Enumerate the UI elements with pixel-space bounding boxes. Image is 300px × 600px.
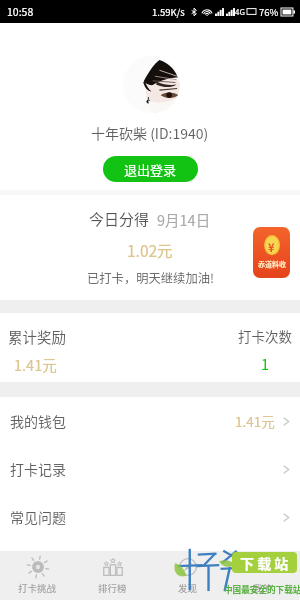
staticText: 排行榜 <box>98 581 127 595</box>
staticText: 1.41元 <box>14 354 57 375</box>
staticText: 已打卡，明天继续加油! <box>87 269 214 287</box>
staticText: 发现 <box>178 581 198 595</box>
staticText: 十年砍柴 (ID:1940) <box>91 123 209 143</box>
staticText: 打卡次数 <box>238 326 292 346</box>
staticText: 常见问题 <box>10 507 66 527</box>
staticText: 1 <box>261 353 270 374</box>
staticText: 中国最安全的下载站 <box>224 583 300 595</box>
staticText: 累计奖励 <box>8 326 66 347</box>
staticText: 76% <box>259 5 279 19</box>
staticText: 下 载 站 <box>240 553 289 573</box>
button[interactable]: 赤道料收 <box>253 227 290 278</box>
button[interactable]: 退出登录 <box>103 156 198 182</box>
button[interactable]: 排行榜 <box>75 551 150 600</box>
staticText: 4G <box>235 6 245 18</box>
button[interactable]: 打卡记录 <box>0 445 300 493</box>
button[interactable]: 头像 <box>123 56 180 113</box>
staticText: 我的钱包 <box>10 411 66 431</box>
staticText: 我的 <box>253 581 273 595</box>
button[interactable]: 打卡挑战 <box>0 551 75 600</box>
staticText: 1.59K/s <box>152 5 185 19</box>
button[interactable]: 打卡次数 <box>150 311 300 383</box>
staticText: 退出登录 <box>124 160 177 179</box>
button[interactable]: 累计奖励 <box>0 311 150 383</box>
staticText: 打卡记录 <box>10 459 66 479</box>
staticText: ¥ <box>268 239 275 255</box>
staticText: 10:58 <box>7 4 34 19</box>
button[interactable]: 我的钱包 <box>0 397 300 445</box>
button[interactable]: 发现 <box>150 551 225 600</box>
staticText: 1.02元 <box>127 239 173 261</box>
button[interactable]: 我的 <box>225 551 300 600</box>
staticText: 1.41元 <box>235 411 275 431</box>
button[interactable]: 常见问题 <box>0 493 300 541</box>
staticText: 今日分得 <box>89 208 150 230</box>
staticText: 9月14日 <box>157 209 211 230</box>
staticText: 赤道料收 <box>258 259 286 269</box>
staticText: 打卡挑战 <box>18 581 57 595</box>
